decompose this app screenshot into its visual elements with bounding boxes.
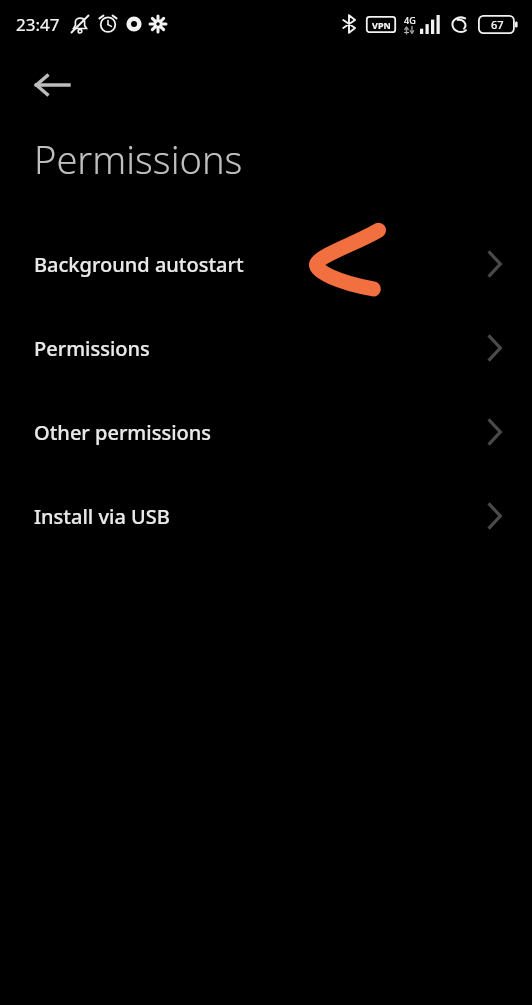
staticText: 67 (491, 17, 504, 32)
staticText: Other permissions (34, 419, 212, 446)
staticText: Background autostart (34, 251, 244, 278)
staticText: VPN (372, 19, 391, 31)
button[interactable]: Back (18, 58, 86, 112)
staticText: Permissions (34, 335, 150, 362)
button[interactable]: Permissions (0, 306, 532, 390)
staticText: Install via USB (34, 503, 170, 530)
staticText: Permissions (34, 133, 243, 185)
staticText: 23:47 (16, 13, 60, 36)
button[interactable]: Install via USB (0, 474, 532, 558)
button[interactable]: Other permissions (0, 390, 532, 474)
button[interactable]: Background autostart (0, 222, 532, 306)
staticText: 4G+ (404, 14, 419, 34)
